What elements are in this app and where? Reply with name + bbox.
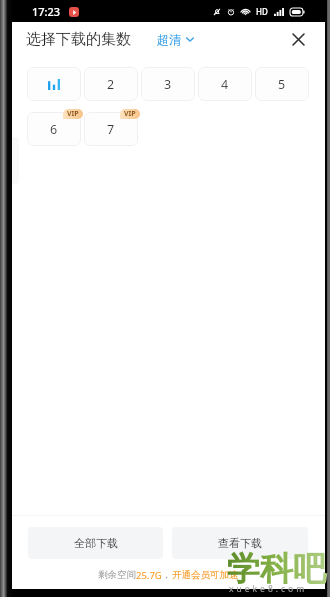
staticText: xueke8.com: [229, 583, 308, 595]
button[interactable]: 全部下载: [28, 527, 163, 559]
button[interactable]: 6: [27, 112, 81, 146]
staticText: 开通会员可加速: [172, 569, 239, 581]
staticText: 2: [107, 76, 115, 93]
button[interactable]: Now playing: [27, 67, 81, 101]
staticText: VIP: [124, 109, 136, 119]
button[interactable]: 查看下载: [172, 527, 308, 559]
staticText: 17:23: [32, 4, 61, 19]
button[interactable]: 4: [198, 67, 252, 101]
staticText: 剩余空间: [98, 569, 136, 581]
staticText: 3: [164, 76, 172, 93]
other: Now playing: [48, 79, 60, 90]
staticText: HD: [256, 6, 268, 17]
staticText: 全部下载: [74, 536, 118, 550]
staticText: 学科吧: [227, 548, 326, 590]
staticText: VIP: [67, 109, 79, 119]
staticText: 超清: [157, 32, 181, 47]
button[interactable]: Close: [281, 22, 315, 56]
staticText: 5: [278, 76, 286, 93]
staticText: 6: [50, 121, 58, 138]
staticText: 4: [221, 76, 229, 93]
staticText: 选择下载的集数: [26, 30, 131, 49]
staticText: 25.7G: [136, 569, 162, 582]
staticText: ，: [162, 569, 172, 581]
button[interactable]: 7: [84, 112, 138, 146]
staticText: 查看下载: [218, 536, 262, 550]
button[interactable]: 3: [141, 67, 195, 101]
button[interactable]: 2: [84, 67, 138, 101]
button[interactable]: 超清: [157, 26, 194, 53]
button[interactable]: 5: [255, 67, 309, 101]
staticText: 7: [107, 121, 115, 138]
